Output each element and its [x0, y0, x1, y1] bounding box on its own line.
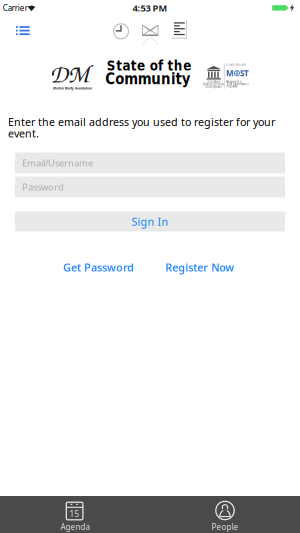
staticText: event.	[8, 126, 39, 140]
button[interactable]: People	[150, 496, 300, 533]
button[interactable]: Get Password	[63, 260, 134, 274]
button[interactable]: Email/Username	[15, 152, 285, 173]
button[interactable]	[172, 20, 187, 39]
button[interactable]	[16, 26, 30, 35]
staticText: Get Password	[63, 260, 134, 274]
staticText: 15	[70, 509, 80, 519]
staticText: Email/Username	[22, 157, 93, 169]
button[interactable]: Sign In	[15, 211, 285, 231]
button[interactable]	[142, 24, 158, 45]
staticText: Management of	[223, 80, 244, 83]
staticText: M	[226, 68, 234, 78]
staticText: United Nations	[203, 80, 224, 83]
staticText: Community	[100, 69, 195, 88]
staticText: Register Now	[165, 260, 234, 274]
button[interactable]	[112, 23, 129, 40]
staticText: Cultural Organization	[199, 85, 228, 88]
staticText: DM	[49, 56, 89, 90]
button[interactable]: 15	[0, 496, 150, 533]
staticText: State of the	[107, 58, 191, 74]
staticText: Programme	[224, 85, 239, 88]
button[interactable]: Register Now	[165, 260, 234, 274]
staticText: Educational, Scientific and	[196, 82, 231, 86]
staticText: Sign In	[131, 214, 168, 229]
staticText: Social Transformations	[223, 82, 251, 86]
button[interactable]: Password	[15, 176, 285, 197]
staticText: Password	[22, 181, 64, 193]
staticText: Carrier	[3, 2, 28, 13]
staticText: ST	[240, 68, 249, 78]
staticText: People	[211, 522, 238, 532]
staticText: Agenda	[60, 522, 89, 532]
staticText: Enter the email address you used to regi…	[8, 115, 275, 129]
staticText: In partnership with	[222, 63, 249, 66]
staticText: 4:53 PM	[132, 2, 167, 14]
staticText: Dhillon Marty Foundation	[53, 87, 92, 90]
